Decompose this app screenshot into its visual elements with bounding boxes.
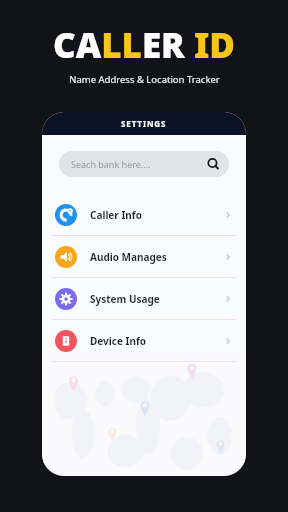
staticText: Seach bank here....	[71, 158, 151, 170]
staticText: Device Info	[90, 334, 147, 348]
button[interactable]: Caller Info	[42, 194, 246, 235]
staticText: System Usage	[90, 292, 160, 306]
button[interactable]: Audio Manages	[42, 236, 246, 277]
button[interactable]: System Usage	[42, 278, 246, 319]
staticText: Name Address & Location Tracker	[69, 73, 220, 86]
staticText: Caller Info	[90, 208, 142, 222]
staticText: SETTINGS	[121, 118, 167, 129]
button[interactable]: Seach bank here....	[59, 151, 229, 177]
staticText: Audio Manages	[90, 250, 167, 264]
button[interactable]: Device Info	[42, 320, 246, 361]
other: Search	[207, 158, 220, 171]
staticText: CALLER ID	[53, 21, 235, 69]
